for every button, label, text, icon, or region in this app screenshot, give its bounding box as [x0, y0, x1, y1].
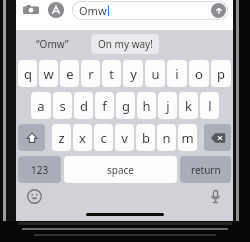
button[interactable]: App Store	[46, 0, 66, 20]
staticText: e	[66, 65, 74, 83]
staticText: h	[142, 97, 151, 115]
button[interactable]: x	[73, 124, 92, 151]
staticText: u	[151, 65, 160, 83]
button[interactable]: 123	[18, 156, 61, 183]
button[interactable]: Camera	[21, 0, 41, 20]
staticText: p	[217, 65, 225, 83]
button[interactable]: a	[31, 92, 51, 119]
button[interactable]: h	[137, 92, 156, 119]
staticText: t	[109, 65, 114, 83]
button[interactable]: r	[81, 60, 100, 87]
button[interactable]: p	[211, 60, 231, 87]
staticText: q	[24, 65, 32, 83]
staticText: 123	[31, 163, 49, 177]
button[interactable]: b	[136, 124, 155, 151]
button[interactable]: Send	[211, 3, 226, 18]
button[interactable]: o	[189, 60, 209, 87]
staticText: y	[130, 65, 137, 83]
staticText: On my way!	[98, 37, 153, 51]
button[interactable]: v	[115, 124, 134, 151]
staticText: x	[79, 129, 86, 147]
staticText: return	[191, 163, 221, 177]
button[interactable]: g	[116, 92, 135, 119]
staticText: space	[107, 163, 134, 177]
staticText: Omw	[79, 3, 107, 18]
button[interactable]: On my way!	[91, 34, 159, 54]
button[interactable]: i	[167, 60, 187, 87]
button[interactable]: “Omw”	[16, 30, 89, 57]
staticText: w	[43, 65, 54, 83]
button[interactable]: n	[157, 124, 176, 151]
button[interactable]: e	[60, 60, 79, 87]
staticText: d	[80, 97, 88, 115]
button[interactable]: Omw	[72, 1, 228, 20]
staticText: f	[102, 97, 107, 115]
staticText: v	[121, 129, 128, 147]
staticText: r	[88, 65, 94, 83]
staticText: i	[175, 65, 179, 83]
button[interactable]: w	[39, 60, 58, 87]
staticText: j	[166, 97, 170, 115]
staticText: b	[142, 129, 150, 147]
button[interactable]: space	[64, 156, 177, 183]
button[interactable]: l	[200, 92, 219, 119]
button[interactable]: y	[123, 60, 143, 87]
button[interactable]: f	[95, 92, 114, 119]
button[interactable]: return	[180, 156, 231, 183]
button[interactable]: z	[52, 124, 71, 151]
button[interactable]: c	[94, 124, 113, 151]
button[interactable]: d	[74, 92, 93, 119]
staticText: “Omw”	[36, 37, 69, 51]
staticText: c	[100, 129, 107, 147]
button[interactable]: k	[179, 92, 198, 119]
button[interactable]: q	[18, 60, 37, 87]
button[interactable]: m	[178, 124, 197, 151]
staticText: m	[181, 129, 194, 147]
staticText: g	[122, 97, 130, 115]
button[interactable]: Backspace	[204, 124, 231, 151]
staticText: k	[185, 97, 192, 115]
button[interactable]: Dictation	[205, 186, 225, 206]
staticText: a	[37, 97, 45, 115]
staticText: o	[195, 65, 203, 83]
button[interactable]: t	[102, 60, 121, 87]
button[interactable]: j	[158, 92, 177, 119]
button[interactable]: Emoji	[24, 186, 44, 206]
button[interactable]: u	[145, 60, 165, 87]
staticText: z	[58, 129, 65, 147]
button[interactable]: Shift	[18, 124, 45, 151]
staticText: l	[208, 97, 212, 115]
staticText: s	[59, 97, 66, 115]
staticText: n	[162, 129, 171, 147]
button[interactable]: s	[53, 92, 72, 119]
